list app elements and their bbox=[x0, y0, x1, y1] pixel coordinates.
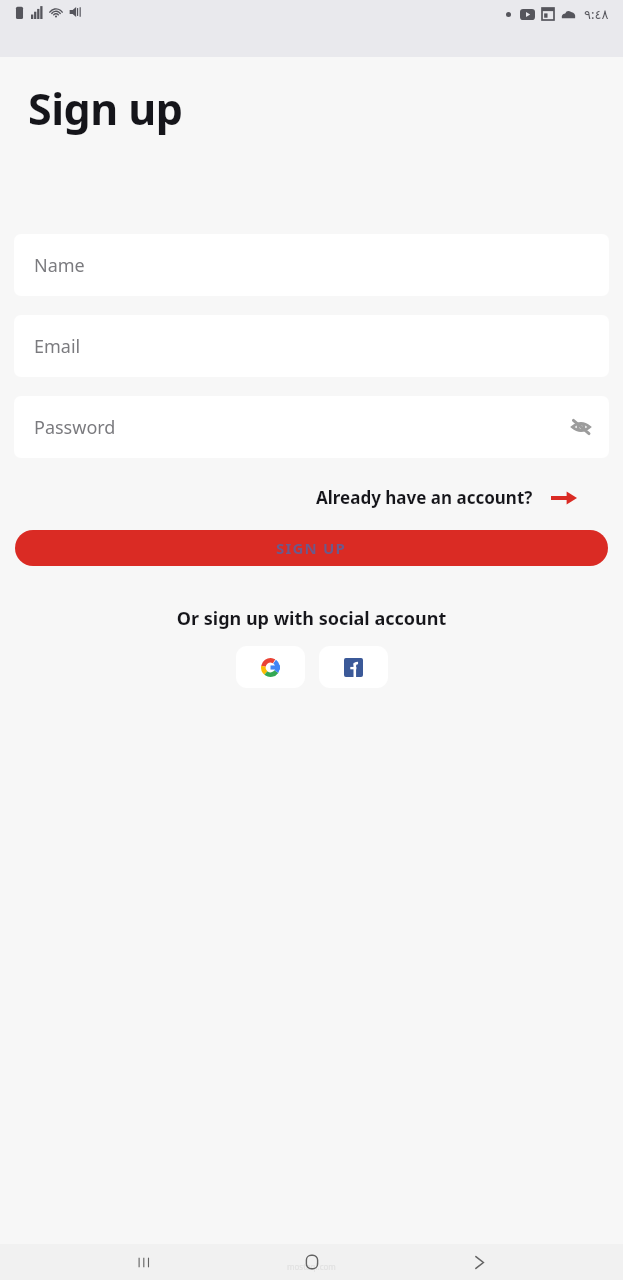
staticText: Name bbox=[34, 253, 85, 278]
staticText: SIGN UP bbox=[276, 538, 347, 558]
button[interactable]: SIGN UP bbox=[15, 530, 608, 566]
button[interactable]: Name bbox=[14, 234, 609, 296]
button[interactable]: Back bbox=[456, 1244, 502, 1280]
button[interactable]: Email bbox=[14, 315, 609, 377]
staticText: Or sign up with social account bbox=[0, 606, 623, 631]
button[interactable]: Sign up with Google bbox=[236, 646, 305, 688]
button[interactable]: Home bbox=[289, 1244, 335, 1280]
staticText: mostaql.com bbox=[287, 1261, 336, 1272]
staticText: Already have an account? bbox=[316, 486, 533, 509]
staticText: Email bbox=[34, 334, 81, 359]
staticText: ٩:٤٨ bbox=[584, 5, 609, 23]
button[interactable]: Sign up with Facebook bbox=[319, 646, 388, 688]
button[interactable]: Already have an account? bbox=[312, 478, 581, 517]
button[interactable]: Password bbox=[14, 396, 609, 458]
button[interactable]: Recent apps bbox=[121, 1244, 167, 1280]
staticText: Sign up bbox=[28, 79, 183, 138]
button[interactable]: Show password bbox=[563, 409, 599, 445]
staticText: Password bbox=[34, 415, 116, 440]
